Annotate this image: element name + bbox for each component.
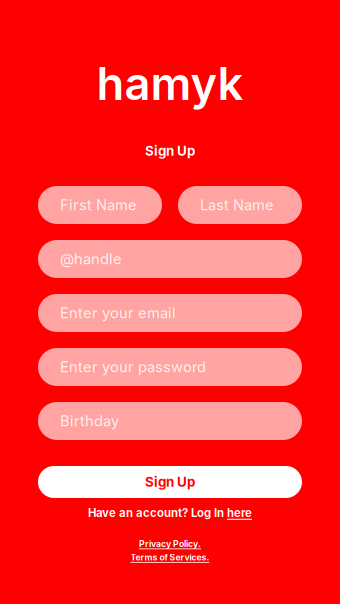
button[interactable]: Enter your password (38, 348, 302, 386)
button[interactable]: @handle (38, 240, 302, 278)
button[interactable]: Privacy Policy. (139, 539, 201, 549)
staticText: Birthday (60, 412, 119, 430)
staticText: Terms of Services. (130, 552, 209, 563)
staticText: Sign Up (145, 143, 195, 159)
button[interactable]: Enter your email (38, 294, 302, 332)
staticText: hamyk (96, 56, 243, 111)
staticText: Have an account? Log In (88, 506, 224, 520)
staticText: Sign Up (145, 474, 195, 490)
staticText: here (227, 506, 252, 520)
button[interactable]: Terms of Services. (130, 552, 209, 563)
staticText: Enter your password (60, 358, 206, 376)
staticText: @handle (60, 250, 122, 268)
button[interactable]: Have an account? Log In (88, 506, 252, 520)
staticText: Privacy Policy. (139, 539, 201, 549)
staticText: Last Name (200, 196, 274, 214)
staticText: Enter your email (60, 304, 176, 322)
button[interactable]: Sign Up (38, 466, 302, 498)
button[interactable]: Birthday (38, 402, 302, 440)
button[interactable]: Last Name (178, 186, 302, 224)
button[interactable]: First Name (38, 186, 162, 224)
staticText: First Name (60, 196, 137, 214)
